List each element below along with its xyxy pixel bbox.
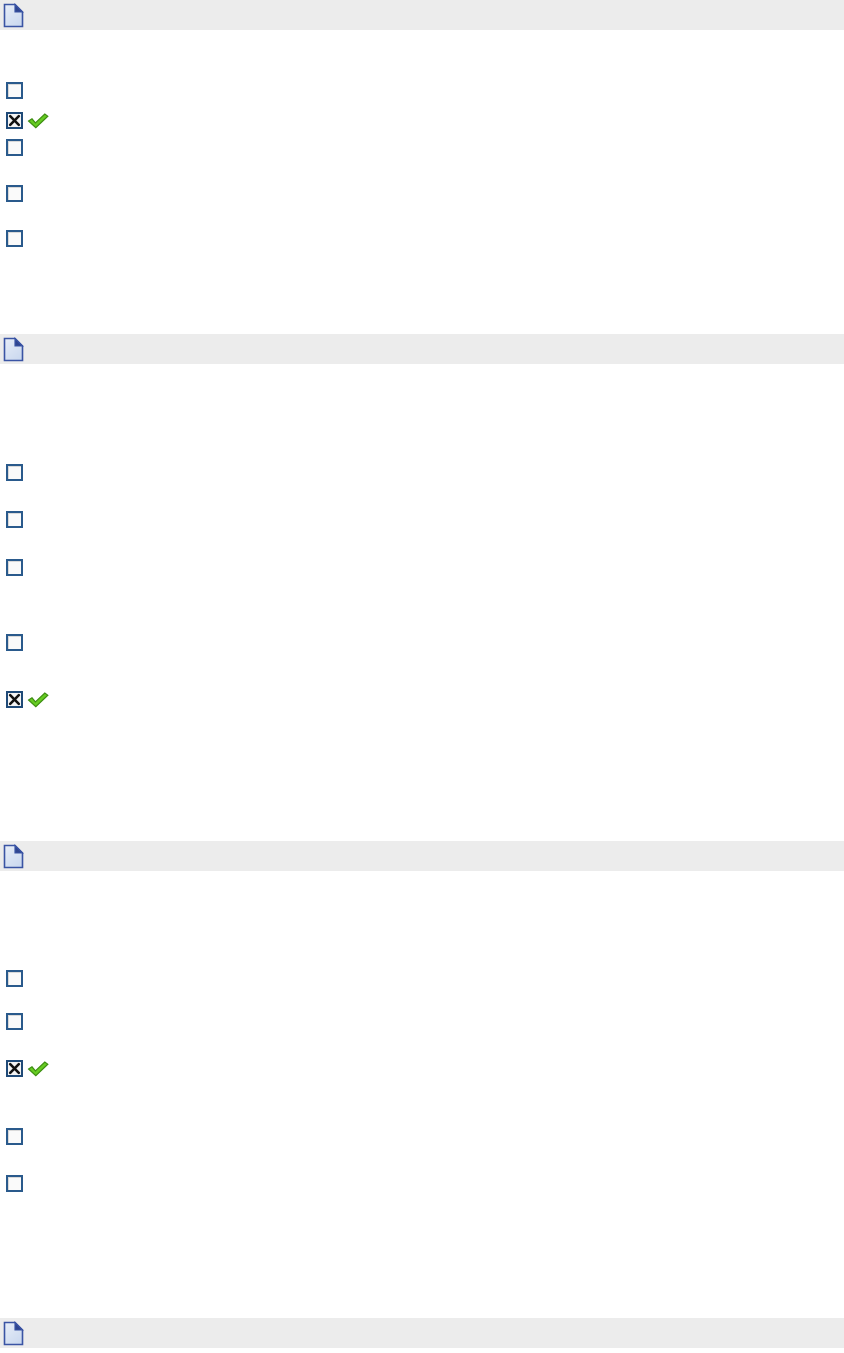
button[interactable]: Option 10 selected	[6, 691, 23, 708]
button[interactable]: Option 15	[6, 1175, 23, 1192]
button[interactable]: Option 14	[6, 1128, 23, 1145]
button[interactable]: Option 1	[6, 82, 23, 99]
button[interactable]: Section 3 document	[0, 841, 844, 871]
button[interactable]: Option 11	[6, 970, 23, 987]
button[interactable]: Option 4	[6, 185, 23, 202]
button[interactable]: Verified	[28, 1061, 48, 1077]
button[interactable]: Section 1 document	[0, 0, 844, 30]
button[interactable]: Section 4 document	[0, 1318, 844, 1348]
button[interactable]: Verified	[28, 692, 48, 708]
button[interactable]: Option 2 selected	[6, 112, 23, 129]
button[interactable]: Option 7	[6, 511, 23, 528]
button[interactable]: Verified	[28, 113, 48, 129]
button[interactable]: Option 3	[6, 139, 23, 156]
button[interactable]: Option 13 selected	[6, 1060, 23, 1077]
button[interactable]: Option 9	[6, 634, 23, 651]
button[interactable]: Option 5	[6, 230, 23, 247]
button[interactable]: Section 2 document	[0, 334, 844, 364]
button[interactable]: Option 6	[6, 464, 23, 481]
button[interactable]: Option 8	[6, 559, 23, 576]
button[interactable]: Option 12	[6, 1013, 23, 1030]
